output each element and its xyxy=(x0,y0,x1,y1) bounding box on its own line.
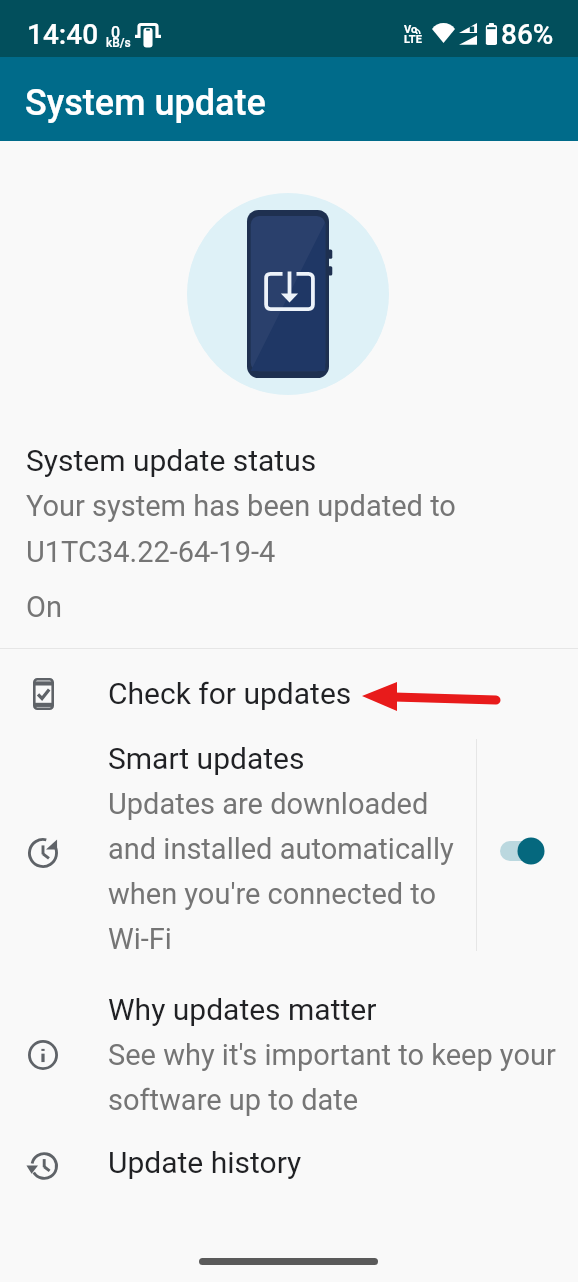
button[interactable]: Smart updates toggle xyxy=(477,739,578,951)
button[interactable]: Why updates matter xyxy=(0,977,578,1122)
staticText: 86% xyxy=(501,18,554,51)
staticText: U1TC34.22-64-19-4 xyxy=(26,535,276,569)
staticText: 14:40 xyxy=(27,18,99,51)
button[interactable]: Smart updates xyxy=(0,739,578,951)
other: Why updates matter xyxy=(28,1040,58,1070)
staticText: Vo xyxy=(404,23,418,36)
staticText: System update status xyxy=(26,443,317,478)
button[interactable]: Check for updates xyxy=(0,649,578,739)
staticText: 0 xyxy=(111,23,121,42)
staticText: LTE xyxy=(404,33,422,46)
staticText: Update history xyxy=(108,1145,302,1180)
staticText: On xyxy=(26,590,62,624)
staticText: Smart updates xyxy=(108,741,305,776)
staticText: System update xyxy=(25,82,266,124)
staticText: Updates are downloaded and installed aut… xyxy=(108,787,454,956)
other: Update history xyxy=(28,1151,58,1181)
staticText: Why updates matter xyxy=(108,992,377,1027)
staticText: Your system has been updated to xyxy=(26,489,456,523)
other: Check for updates xyxy=(33,678,54,710)
staticText: kB/s xyxy=(106,36,131,50)
staticText: Check for updates xyxy=(108,676,352,711)
button[interactable]: Update history xyxy=(0,1122,578,1202)
other: Smart updates xyxy=(28,838,58,868)
staticText: See why it's important to keep your soft… xyxy=(108,1038,556,1117)
